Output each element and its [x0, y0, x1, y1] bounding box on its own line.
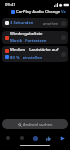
staticText: Android suchen [23, 122, 53, 127]
staticText: Musik Fortsetzen [10, 38, 47, 44]
button[interactable]: Send [57, 133, 67, 143]
staticText: CarPlay Audio Change [16, 9, 61, 15]
button[interactable]: Android suchen [2, 119, 68, 129]
button[interactable]: Medien Lautstärke auf [2, 46, 68, 62]
button[interactable]: Home [3, 133, 13, 143]
staticText: Verify [61, 9, 67, 15]
staticText: 3 Sekunden [10, 20, 34, 26]
staticText: 80 % einstellen [10, 55, 43, 61]
button[interactable]: Like [43, 133, 53, 143]
button[interactable]: Apps [17, 133, 27, 143]
button[interactable]: Wiedergabeliste [2, 31, 68, 44]
staticText: Medien Lautstärke auf [10, 47, 59, 53]
button[interactable]: Assistant [30, 133, 40, 143]
button[interactable]: 3 Sekunden [2, 18, 68, 28]
staticText: Wiedergabeliste [10, 31, 43, 37]
staticText: 09:41 [5, 2, 16, 8]
staticText: ansehen [43, 21, 59, 26]
